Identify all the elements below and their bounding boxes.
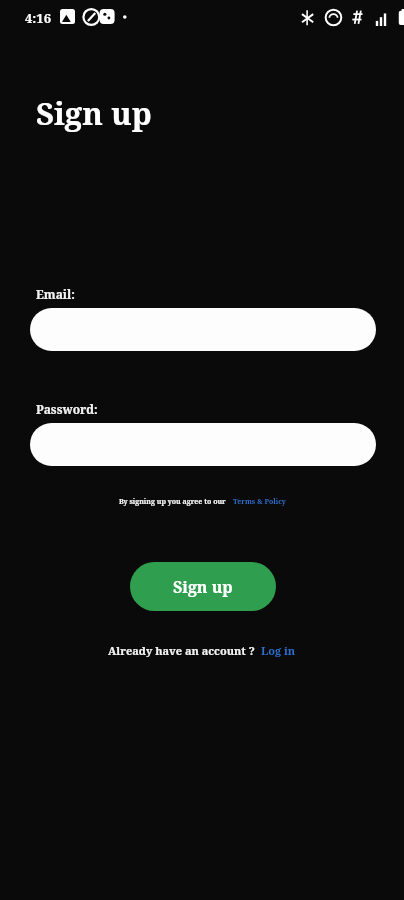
staticText: Terms & Policy (233, 497, 286, 507)
button[interactable]: Password input field (30, 423, 376, 466)
button[interactable]: Email input field (30, 308, 376, 351)
staticText: Password: (36, 401, 98, 417)
button[interactable]: Terms & Policy (233, 497, 286, 507)
staticText: Sign up (173, 576, 233, 598)
staticText: 4:16 (25, 9, 51, 27)
button[interactable]: Log in (261, 643, 296, 658)
staticText: Sign up (36, 92, 152, 134)
staticText: By signing up you agree to our (119, 497, 226, 507)
staticText: Email: (36, 286, 75, 302)
button[interactable]: Sign up (130, 562, 276, 611)
staticText: Log in (261, 643, 296, 658)
staticText: Already have an account ? (108, 643, 255, 658)
